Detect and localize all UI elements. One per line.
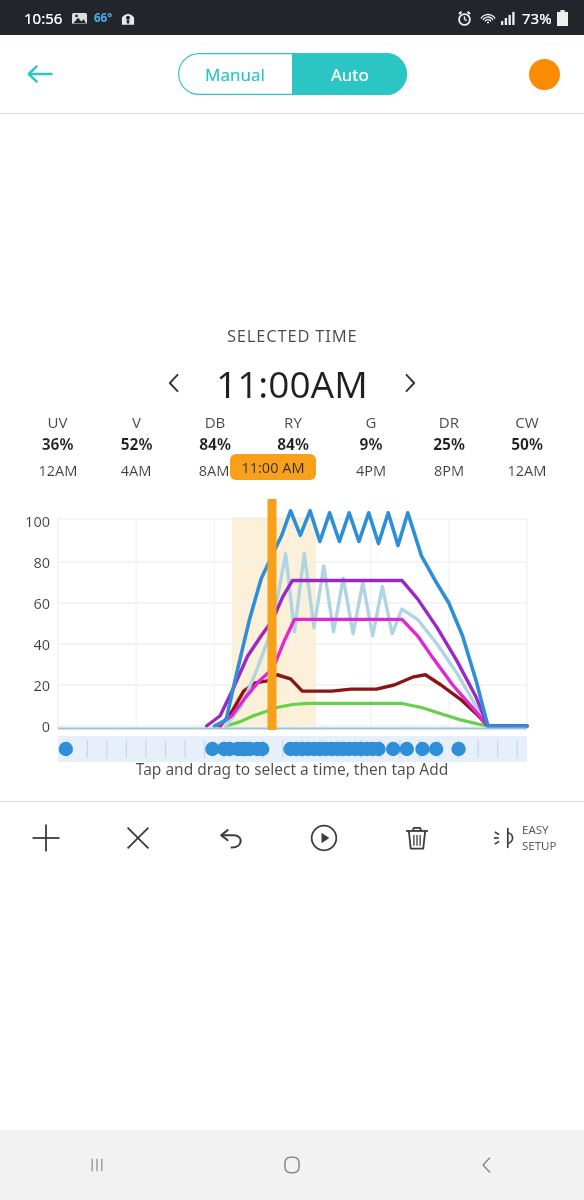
staticText: 84%	[176, 433, 254, 454]
staticText: V	[97, 412, 176, 432]
staticText: 52%	[97, 433, 176, 454]
button[interactable]: UV	[18, 412, 97, 454]
staticText: 80	[4, 552, 50, 572]
staticText: 60	[4, 593, 50, 613]
staticText: 73%	[522, 8, 552, 28]
button[interactable]: Next time	[386, 359, 434, 407]
staticText: Tap and drag to select a time, then tap …	[0, 758, 584, 779]
staticText: 20	[4, 675, 50, 695]
staticText: 84%	[254, 433, 332, 454]
staticText: 4PM	[339, 460, 403, 480]
button[interactable]: Manual	[178, 53, 292, 95]
button[interactable]: G	[332, 412, 410, 454]
button[interactable]: DB	[176, 412, 254, 454]
staticText: 8PM	[417, 460, 481, 480]
button[interactable]: Play	[277, 802, 370, 874]
staticText: 10:56	[24, 8, 63, 28]
staticText: RY	[254, 412, 332, 432]
staticText: CW	[488, 412, 566, 432]
button[interactable]: Schedule chart	[0, 458, 584, 744]
staticText: 25%	[410, 433, 488, 454]
button[interactable]: V	[97, 412, 176, 454]
button[interactable]: DR	[410, 412, 488, 454]
staticText: Manual	[205, 63, 265, 86]
staticText: 8AM	[182, 460, 246, 480]
staticText: 40	[4, 634, 50, 654]
staticText: 50%	[488, 433, 566, 454]
staticText: SETUP	[522, 838, 557, 854]
button[interactable]: Back	[14, 48, 66, 100]
staticText: 36%	[18, 433, 97, 454]
button[interactable]: Recent apps	[0, 1130, 194, 1200]
button[interactable]: Home	[194, 1130, 389, 1200]
button[interactable]: Previous time	[150, 359, 198, 407]
button[interactable]: Auto	[292, 53, 407, 95]
staticText: 9%	[332, 433, 410, 454]
staticText: EASY	[522, 822, 549, 838]
button[interactable]: EASY	[463, 802, 584, 874]
button[interactable]: RY	[254, 412, 332, 454]
staticText: 100	[4, 511, 50, 531]
button[interactable]: Cancel	[92, 802, 184, 874]
button[interactable]: Back	[389, 1130, 584, 1200]
button[interactable]: Add	[0, 802, 92, 874]
button[interactable]: CW	[488, 412, 566, 454]
staticText: 11:00 AM	[230, 457, 316, 477]
staticText: 4AM	[104, 460, 168, 480]
staticText: UV	[18, 412, 97, 432]
staticText: 66°	[94, 10, 113, 26]
staticText: G	[332, 412, 410, 432]
staticText: 12AM	[26, 460, 90, 480]
button[interactable]: Undo	[184, 802, 277, 874]
staticText: 0	[4, 716, 50, 736]
staticText: 12AM	[495, 460, 559, 480]
staticText: 11:00AM	[216, 358, 368, 408]
staticText: Auto	[331, 63, 369, 86]
staticText: DB	[176, 412, 254, 432]
button[interactable]: Colour preview	[522, 52, 566, 96]
staticText: SELECTED TIME	[227, 324, 358, 346]
staticText: DR	[410, 412, 488, 432]
button[interactable]: Delete	[370, 802, 463, 874]
